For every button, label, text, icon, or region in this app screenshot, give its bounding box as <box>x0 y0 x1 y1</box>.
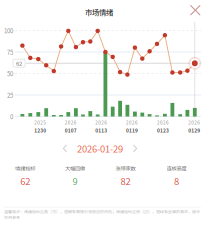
staticText: 100 <box>4 26 13 35</box>
staticText: 25 <box>7 91 13 99</box>
staticText: 连板高度 <box>166 164 186 172</box>
staticText: 82 <box>120 174 130 188</box>
staticText: 1230 <box>34 127 46 134</box>
staticText: 0113 <box>95 127 107 134</box>
staticText: 2026 <box>126 119 138 126</box>
staticText: 0123 <box>157 127 169 134</box>
staticText: 0107 <box>65 127 77 134</box>
staticText: 0 <box>10 112 13 121</box>
staticText: 温馨提示：情绪指标过高（75），短期有释放引领效应的风险；情绪指标过低（25），… <box>4 208 200 220</box>
staticText: 62 <box>16 59 22 67</box>
button[interactable]: 2026-01-29 <box>72 141 128 156</box>
button[interactable]: Previous day <box>58 141 72 156</box>
staticText: 2026 <box>188 119 200 126</box>
staticText: 62 <box>20 174 30 188</box>
staticText: 0129 <box>188 127 200 134</box>
staticText: 市场情绪 <box>85 7 113 17</box>
staticText: 75 <box>7 48 13 56</box>
staticText: 50 <box>7 69 13 78</box>
button[interactable]: Next day <box>128 141 142 156</box>
staticText: 8 <box>174 174 179 188</box>
staticText: 2025 <box>34 119 46 126</box>
staticText: 大幅回撤 <box>65 164 85 172</box>
staticText: 情绪指标 <box>15 164 35 172</box>
staticText: 0119 <box>126 127 138 134</box>
staticText: 涨停家数 <box>115 164 135 172</box>
staticText: 2026 <box>95 119 107 126</box>
staticText: 9 <box>72 174 77 188</box>
staticText: 2026 <box>157 119 169 126</box>
button[interactable]: Close <box>184 0 204 21</box>
staticText: 2026 <box>65 119 77 126</box>
staticText: 2026-01-29 <box>77 142 123 155</box>
